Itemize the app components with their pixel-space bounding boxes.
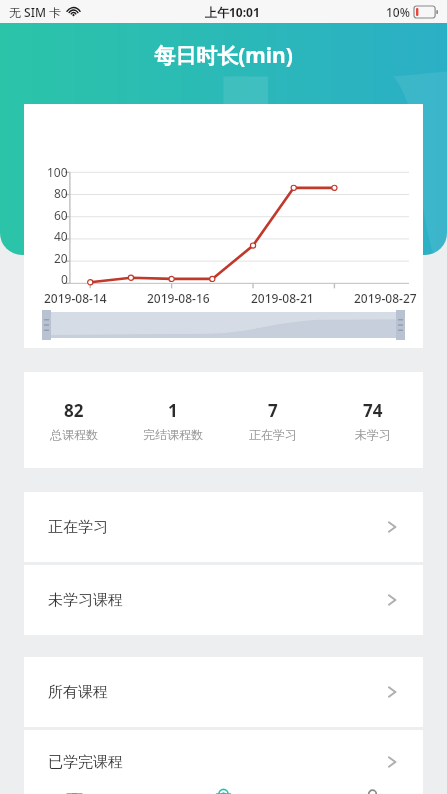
staticText: 20 xyxy=(54,250,68,266)
button[interactable]: 已学完课程 xyxy=(24,730,423,794)
staticText: 2019-08-21 xyxy=(251,290,314,306)
button[interactable]: 未学习课程 xyxy=(24,565,423,635)
staticText: 1 xyxy=(168,399,178,422)
staticText: 10% xyxy=(386,4,410,20)
staticText: 2019-08-14 xyxy=(44,290,107,306)
staticText: 80 xyxy=(54,185,68,201)
staticText: 正在学习 xyxy=(249,427,297,442)
button[interactable]: 所有课程 xyxy=(24,657,423,727)
staticText: 总课程数 xyxy=(50,427,98,442)
button[interactable]: 正在学习 xyxy=(24,492,423,562)
staticText: 2019-08-16 xyxy=(147,290,210,306)
staticText: 已学完课程 xyxy=(48,753,123,772)
staticText: 7 xyxy=(268,399,278,422)
staticText: 上午10:01 xyxy=(205,4,260,20)
staticText: 100 xyxy=(47,164,68,180)
staticText: 所有课程 xyxy=(48,683,108,702)
staticText: 正在学习 xyxy=(48,518,108,537)
staticText: 74 xyxy=(363,399,383,422)
staticText: 82 xyxy=(64,399,84,422)
staticText: 未学习 xyxy=(355,427,391,442)
staticText: 40 xyxy=(54,228,68,244)
staticText: 0 xyxy=(61,271,68,287)
staticText: 未学习课程 xyxy=(48,591,123,610)
staticText: 2019-08-27 xyxy=(354,290,417,306)
staticText: 完结课程数 xyxy=(143,427,203,442)
staticText: 每日时长(min) xyxy=(154,41,293,70)
staticText: 无 SIM 卡 xyxy=(9,4,62,20)
staticText: 60 xyxy=(54,207,68,223)
